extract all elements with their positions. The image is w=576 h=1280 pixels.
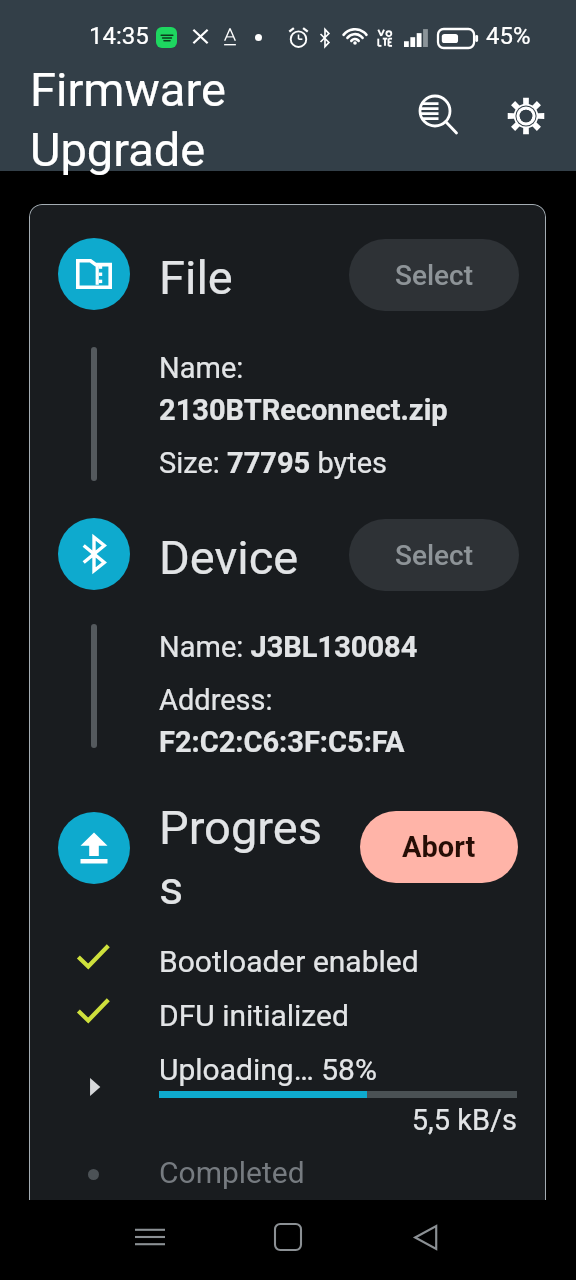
staticText: Completed bbox=[159, 1155, 305, 1190]
staticText: Abort bbox=[402, 830, 476, 864]
staticText: 14:35 bbox=[89, 22, 149, 50]
button[interactable]: Select bbox=[349, 519, 519, 591]
staticText: Device bbox=[159, 530, 299, 585]
staticText: Firmware Upgrade bbox=[30, 62, 280, 177]
button[interactable]: Recents bbox=[120, 1207, 180, 1267]
button[interactable]: Search bbox=[408, 84, 468, 144]
staticText: Name: J3BL130084 bbox=[159, 630, 418, 664]
staticText: 5,5 kB/s bbox=[159, 1103, 517, 1137]
staticText: 45% bbox=[486, 22, 531, 50]
button[interactable]: Settings bbox=[496, 86, 556, 146]
staticText: Uploading… 58% bbox=[159, 1052, 377, 1087]
staticText: Progress bbox=[159, 800, 334, 915]
staticText: File bbox=[159, 250, 233, 305]
staticText: DFU initialized bbox=[159, 998, 349, 1033]
button[interactable]: Select bbox=[349, 239, 519, 311]
staticText: Select bbox=[395, 259, 474, 292]
staticText: Address: F2:C2:C6:3F:C5:FA bbox=[159, 683, 459, 759]
button[interactable]: Home bbox=[258, 1207, 318, 1267]
button[interactable]: Abort bbox=[360, 811, 518, 883]
staticText: Select bbox=[395, 539, 474, 572]
staticText: Bootloader enabled bbox=[159, 944, 419, 979]
staticText: Name: 2130BTReconnect.zip bbox=[159, 351, 469, 427]
staticText: Size: 77795 bytes bbox=[159, 446, 388, 480]
button[interactable]: Back bbox=[396, 1207, 456, 1267]
